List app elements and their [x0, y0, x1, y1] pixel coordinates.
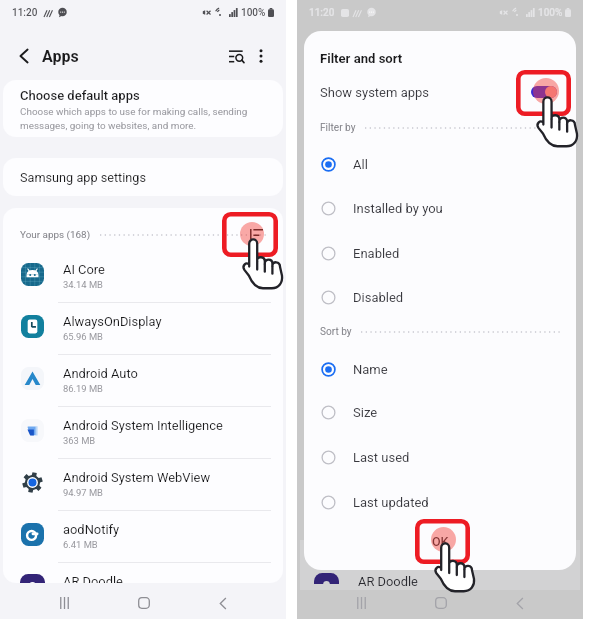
button[interactable]: OK: [420, 526, 460, 556]
button[interactable]: AlwaysOnDisplay: [3, 302, 283, 354]
button[interactable]: Name: [304, 347, 576, 391]
button[interactable]: Samsung app settings: [3, 158, 283, 196]
button[interactable]: AI Core: [3, 250, 283, 302]
staticText: AR Doodle: [63, 574, 123, 583]
button[interactable]: All: [304, 142, 576, 186]
button[interactable]: Show system apps: [304, 78, 576, 106]
staticText: OK: [432, 534, 449, 549]
button[interactable]: Recents: [24, 585, 104, 619]
staticText: Android Auto: [63, 366, 138, 381]
button[interactable]: aodNotify: [3, 510, 283, 562]
staticText: 6.41 MB: [63, 539, 98, 550]
button[interactable]: Back: [480, 585, 559, 619]
staticText: 94.97 MB: [63, 487, 103, 498]
staticText: 363 MB: [63, 435, 96, 446]
button[interactable]: Back: [183, 585, 262, 619]
staticText: Enabled: [353, 246, 400, 261]
staticText: Your apps (168): [20, 229, 91, 241]
staticText: Android System Intelligence: [63, 418, 223, 433]
staticText: Size: [353, 405, 378, 420]
staticText: Last used: [353, 450, 410, 465]
button[interactable]: Choose default apps: [3, 80, 283, 137]
button[interactable]: Android System WebView: [3, 458, 283, 510]
staticText: Samsung app settings: [20, 170, 147, 185]
button[interactable]: Android System Intelligence: [3, 406, 283, 458]
button[interactable]: Android Auto: [3, 354, 283, 406]
button[interactable]: Disabled: [304, 275, 576, 319]
staticText: 11:20: [309, 7, 335, 19]
staticText: Show system apps: [320, 85, 430, 100]
button[interactable]: Home: [104, 585, 183, 619]
staticText: AI Core: [63, 262, 105, 277]
staticText: Disabled: [353, 290, 404, 305]
staticText: Installed by you: [353, 201, 443, 216]
staticText: 11:20: [12, 7, 38, 19]
staticText: Filter by: [320, 122, 356, 134]
button[interactable]: Back: [10, 42, 38, 70]
staticText: aodNotify: [63, 522, 120, 537]
staticText: 100%: [241, 7, 266, 19]
staticText: 100%: [538, 7, 563, 19]
button[interactable]: AR Doodle: [3, 562, 283, 583]
button[interactable]: Recents: [321, 585, 401, 619]
button[interactable]: Sort and filter: [244, 222, 268, 246]
button[interactable]: Home: [401, 585, 480, 619]
staticText: Android System WebView: [63, 470, 211, 485]
staticText: 86.19 MB: [63, 383, 103, 394]
staticText: All: [353, 157, 368, 172]
staticText: AR Doodle: [358, 574, 418, 589]
button[interactable]: More options: [247, 42, 275, 70]
button[interactable]: Search: [222, 42, 250, 70]
staticText: 65.96 MB: [63, 331, 103, 342]
staticText: Apps: [42, 47, 79, 66]
button[interactable]: Last used: [304, 435, 576, 479]
staticText: Choose default apps: [20, 88, 140, 103]
button[interactable]: Last updated: [304, 480, 576, 524]
staticText: Name: [353, 362, 388, 377]
staticText: Filter and sort: [320, 51, 403, 66]
button[interactable]: Installed by you: [304, 186, 576, 230]
button[interactable]: Enabled: [304, 231, 576, 275]
staticText: Choose which apps to use for making call…: [20, 106, 252, 132]
staticText: Sort by: [320, 326, 352, 338]
staticText: Last updated: [353, 495, 429, 510]
button[interactable]: Size: [304, 390, 576, 434]
staticText: 34.14 MB: [63, 279, 103, 290]
staticText: AlwaysOnDisplay: [63, 314, 162, 329]
